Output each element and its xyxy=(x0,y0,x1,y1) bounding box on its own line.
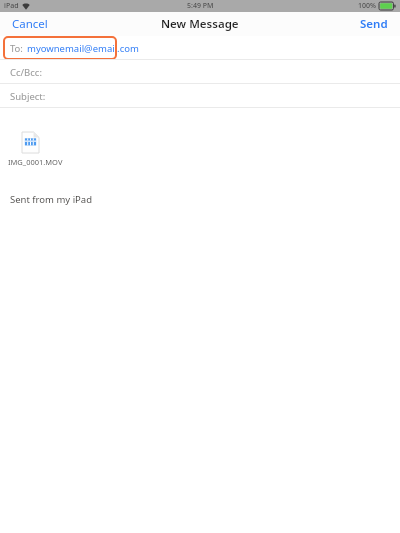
staticText: 100% xyxy=(358,1,376,11)
button[interactable]: Cc/Bcc: xyxy=(0,60,400,84)
staticText: Subject: xyxy=(10,90,46,103)
staticText: Send xyxy=(360,16,388,32)
button[interactable]: Send xyxy=(348,12,400,36)
button[interactable]: To: xyxy=(0,36,400,60)
staticText: 5:49 PM xyxy=(187,1,214,11)
staticText: Cc/Bcc: xyxy=(10,66,42,79)
staticText: Cancel xyxy=(12,16,48,32)
staticText: myownemail@email.com xyxy=(27,42,139,55)
staticText: iPad xyxy=(4,1,19,11)
staticText: IMG_0001.MOV xyxy=(8,157,63,167)
button[interactable]: Subject: xyxy=(0,84,400,108)
staticText: New Message xyxy=(161,16,239,32)
button[interactable]: Cancel xyxy=(0,12,60,36)
staticText: Sent from my iPad xyxy=(10,193,93,206)
staticText: To: xyxy=(10,42,23,55)
button[interactable]: Attachment IMG_0001.MOV xyxy=(8,132,63,167)
